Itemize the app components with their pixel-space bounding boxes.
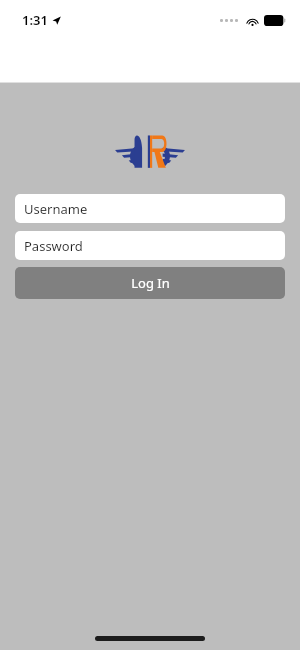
other: MR logo (114, 131, 186, 169)
button[interactable]: Username (15, 194, 285, 223)
staticText: Password (24, 237, 83, 255)
button[interactable]: Password (15, 231, 285, 260)
button[interactable]: Log In (15, 267, 285, 299)
staticText: 1:31 (22, 11, 48, 29)
staticText: Username (24, 200, 88, 218)
staticText: Log In (131, 274, 170, 292)
